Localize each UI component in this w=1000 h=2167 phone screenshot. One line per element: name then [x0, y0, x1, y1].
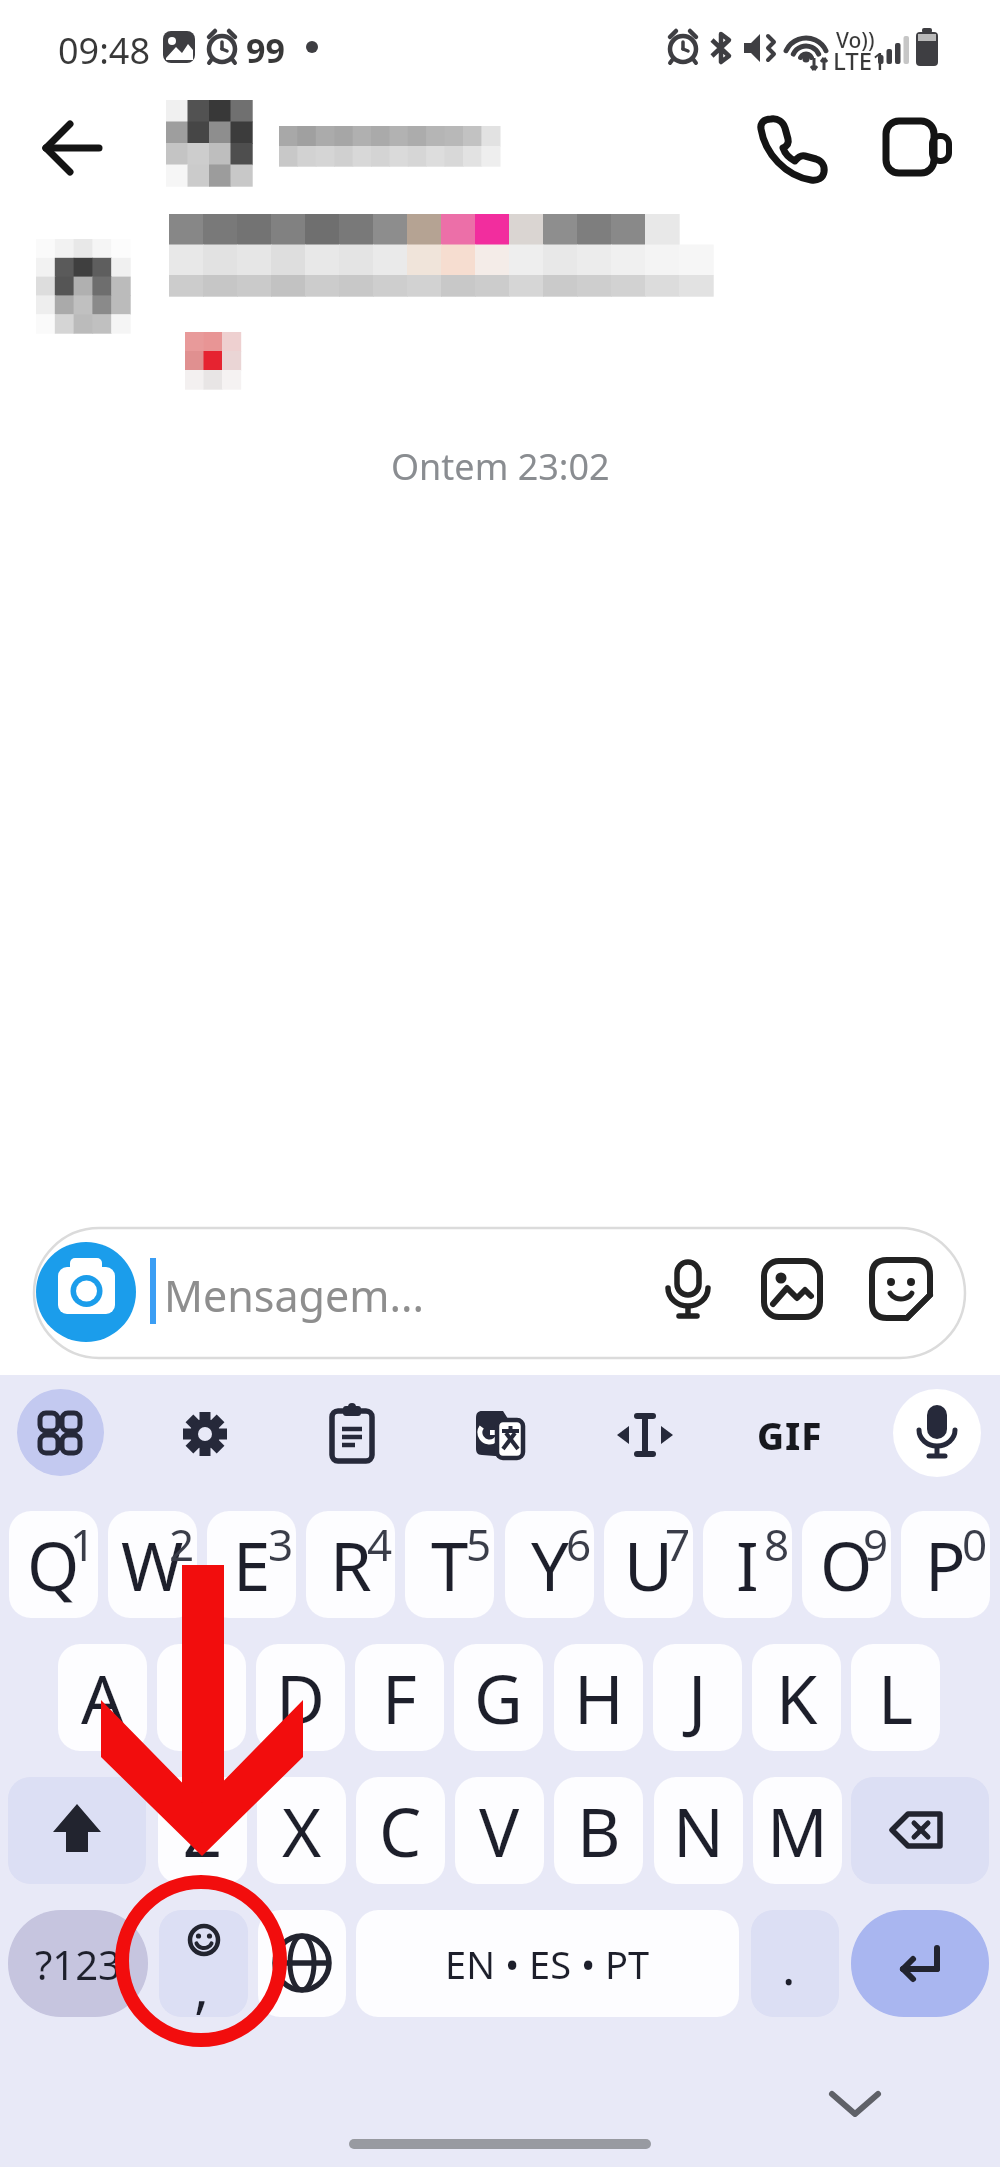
- staticText: Vo)): [836, 26, 875, 55]
- staticText: 09:48: [58, 26, 151, 75]
- button[interactable]: [764, 1260, 820, 1320]
- staticText: K: [776, 1652, 818, 1743]
- button[interactable]: R: [306, 1511, 395, 1618]
- staticText: F: [382, 1652, 417, 1743]
- staticText: 0: [962, 1514, 988, 1574]
- button[interactable]: [745, 108, 827, 188]
- button[interactable]: [326, 1407, 378, 1465]
- staticText: J: [688, 1652, 707, 1743]
- button[interactable]: [851, 1777, 989, 1884]
- button[interactable]: G: [454, 1644, 543, 1751]
- button[interactable]: [875, 108, 960, 188]
- staticText: 3: [268, 1514, 294, 1574]
- button[interactable]: E: [207, 1511, 296, 1618]
- staticText: .: [782, 1932, 796, 2000]
- button[interactable]: B: [554, 1777, 643, 1884]
- button[interactable]: [17, 1389, 104, 1476]
- button[interactable]: L: [851, 1644, 940, 1751]
- button[interactable]: C: [356, 1777, 445, 1884]
- button[interactable]: [34, 1228, 965, 1358]
- button[interactable]: T: [405, 1511, 494, 1618]
- button[interactable]: U: [604, 1511, 693, 1618]
- staticText: 5: [466, 1514, 492, 1574]
- button[interactable]: [660, 1260, 716, 1324]
- button[interactable]: [751, 1910, 839, 2017]
- staticText: 7: [665, 1514, 691, 1574]
- button[interactable]: [872, 1258, 932, 1320]
- staticText: GIF: [757, 1410, 823, 1460]
- staticText: D: [276, 1652, 325, 1743]
- button[interactable]: [36, 1242, 136, 1342]
- staticText: 6: [566, 1514, 592, 1574]
- staticText: Q: [27, 1519, 80, 1610]
- button[interactable]: [893, 1389, 981, 1477]
- button[interactable]: Q: [9, 1511, 98, 1618]
- staticText: 99: [246, 27, 285, 73]
- staticText: 4: [367, 1514, 393, 1574]
- button[interactable]: EN • ES • PT: [356, 1910, 739, 2017]
- staticText: P: [925, 1519, 966, 1610]
- button[interactable]: [30, 106, 114, 190]
- button[interactable]: S: [157, 1644, 246, 1751]
- button[interactable]: N: [654, 1777, 743, 1884]
- button[interactable]: [159, 1910, 248, 2017]
- staticText: L: [878, 1652, 914, 1743]
- button[interactable]: Z: [158, 1777, 247, 1884]
- staticText: B: [577, 1785, 621, 1876]
- button[interactable]: [178, 1407, 232, 1461]
- staticText: E: [233, 1519, 271, 1610]
- button[interactable]: [617, 1410, 673, 1460]
- staticText: X: [282, 1785, 322, 1876]
- staticText: G: [474, 1652, 523, 1743]
- button[interactable]: F: [355, 1644, 444, 1751]
- staticText: Y: [531, 1519, 569, 1610]
- button[interactable]: P: [901, 1511, 990, 1618]
- button[interactable]: K: [752, 1644, 841, 1751]
- staticText: U: [624, 1519, 673, 1610]
- button[interactable]: W: [108, 1511, 197, 1618]
- button[interactable]: O: [802, 1511, 891, 1618]
- button[interactable]: J: [653, 1644, 742, 1751]
- staticText: 2: [169, 1514, 195, 1574]
- staticText: C: [379, 1785, 422, 1876]
- button[interactable]: [8, 1777, 146, 1884]
- staticText: R: [330, 1519, 372, 1610]
- button[interactable]: D: [256, 1644, 345, 1751]
- staticText: 1: [70, 1514, 96, 1574]
- staticText: Z: [183, 1785, 222, 1876]
- staticText: O: [820, 1519, 873, 1610]
- button[interactable]: [851, 1910, 989, 2017]
- staticText: I: [736, 1519, 759, 1610]
- staticText: ?123: [35, 1937, 121, 1991]
- staticText: W: [121, 1519, 184, 1610]
- button[interactable]: GIF: [755, 1410, 825, 1460]
- button[interactable]: [470, 1408, 530, 1464]
- staticText: 8: [764, 1514, 790, 1574]
- staticText: Mensagem...: [164, 1266, 425, 1325]
- button[interactable]: [258, 1910, 346, 2017]
- staticText: H: [574, 1652, 624, 1743]
- staticText: M: [767, 1785, 828, 1876]
- staticText: ,: [194, 1948, 210, 2024]
- staticText: V: [479, 1785, 520, 1876]
- staticText: 9: [863, 1514, 889, 1574]
- staticText: LTE1: [833, 44, 886, 77]
- button[interactable]: I: [703, 1511, 792, 1618]
- staticText: T: [431, 1519, 469, 1610]
- button[interactable]: V: [455, 1777, 544, 1884]
- staticText: N: [673, 1785, 724, 1876]
- button[interactable]: M: [753, 1777, 842, 1884]
- staticText: Ontem 23:02: [391, 442, 610, 491]
- button[interactable]: A: [58, 1644, 147, 1751]
- button[interactable]: Y: [505, 1511, 594, 1618]
- button[interactable]: H: [554, 1644, 643, 1751]
- staticText: EN • ES • PT: [445, 1938, 650, 1990]
- staticText: A: [81, 1652, 124, 1743]
- button[interactable]: ?123: [8, 1910, 148, 2017]
- button[interactable]: X: [257, 1777, 346, 1884]
